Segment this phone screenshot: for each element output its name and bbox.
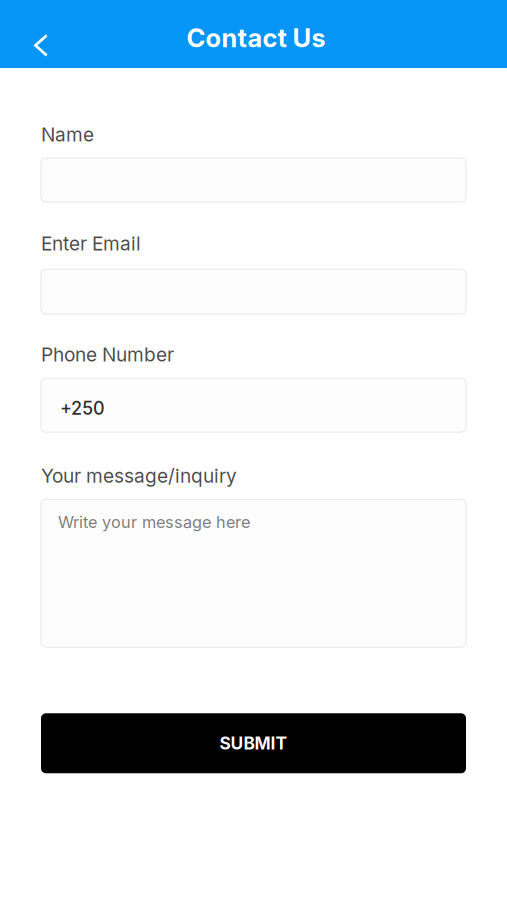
button[interactable]: Back bbox=[19, 0, 63, 68]
staticText: +250 bbox=[60, 397, 105, 419]
staticText: Name bbox=[41, 123, 94, 146]
staticText: Your message/inquiry bbox=[41, 464, 237, 487]
staticText: Contact Us bbox=[186, 22, 325, 53]
staticText: Phone Number bbox=[41, 343, 174, 366]
staticText: Enter Email bbox=[41, 232, 141, 255]
button[interactable]: SUBMIT bbox=[41, 713, 466, 773]
staticText: Write your message here bbox=[58, 512, 250, 532]
staticText: SUBMIT bbox=[219, 733, 287, 754]
